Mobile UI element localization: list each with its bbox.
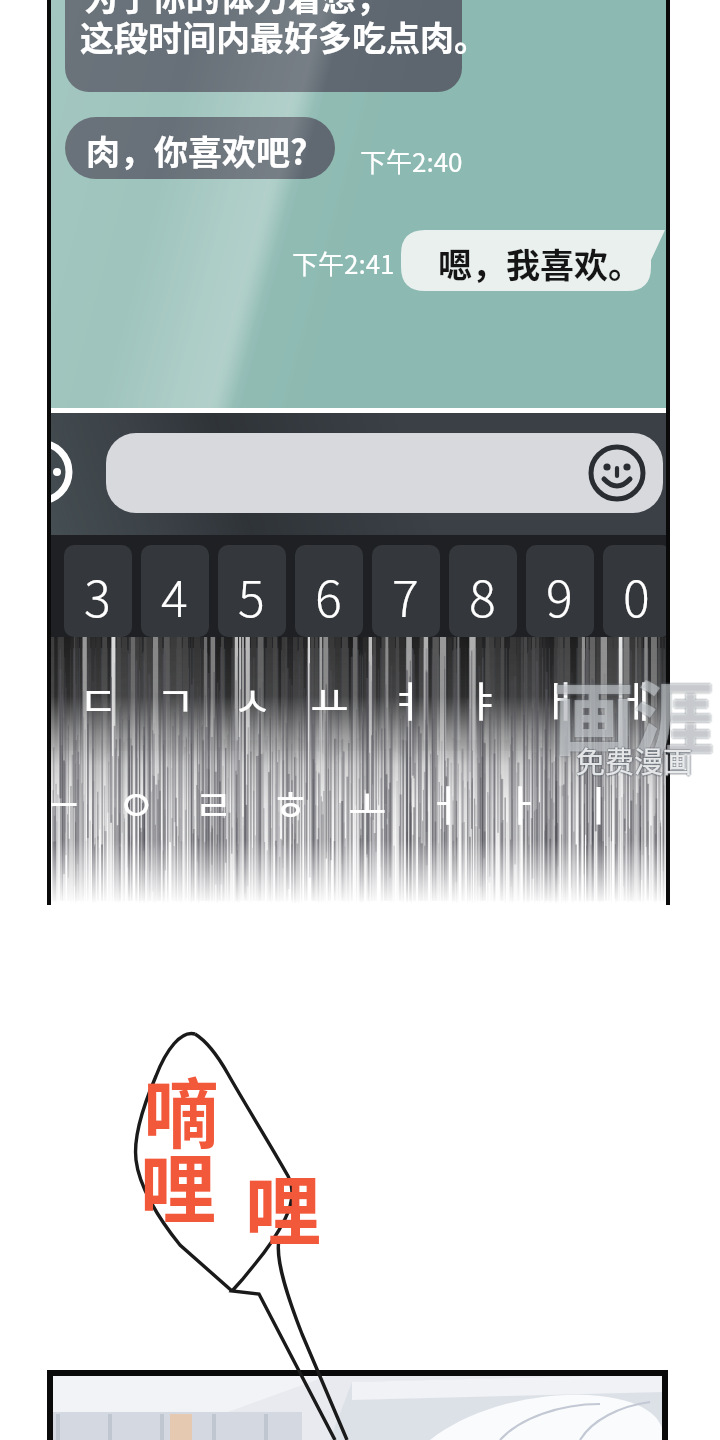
staticText: ㅛ xyxy=(310,668,349,729)
staticText: 免费漫画 xyxy=(578,739,695,781)
staticText: ㅇ xyxy=(117,772,156,833)
staticText: 画涯 xyxy=(553,656,713,772)
staticText: 肉，你喜欢吧? xyxy=(86,126,308,175)
staticText: 为了你的体力着想， xyxy=(84,0,390,21)
staticText: ㅕ xyxy=(387,668,426,729)
staticText: 下午2:41 xyxy=(292,244,395,282)
staticText: 画涯 xyxy=(552,655,712,771)
staticText: 画涯 xyxy=(554,655,714,771)
staticText: 嘀 xyxy=(143,1054,219,1164)
staticText: ㄹ xyxy=(194,772,233,833)
staticText: 画涯 xyxy=(553,654,713,770)
staticText: 7 xyxy=(392,559,419,631)
button[interactable]: Add attachment xyxy=(16,447,68,499)
button[interactable]: Emoji picker xyxy=(591,447,643,499)
staticText: ㄷ xyxy=(79,668,118,729)
staticText: ㅔ xyxy=(618,668,657,729)
staticText: ㅎ xyxy=(271,772,310,833)
staticText: ㄱ xyxy=(156,668,195,729)
staticText: 免费漫画 xyxy=(576,741,693,783)
staticText: ㅑ xyxy=(464,668,503,729)
staticText: ㅓ xyxy=(425,772,464,833)
staticText: ㅡ xyxy=(51,772,79,833)
staticText: 哩 xyxy=(140,1129,216,1239)
button[interactable]: Message input field xyxy=(106,433,663,513)
staticText: 画涯 xyxy=(555,654,715,770)
staticText: 9 xyxy=(546,559,573,631)
staticText: 3 xyxy=(84,559,111,631)
staticText: 0 xyxy=(623,559,650,631)
staticText: 免费漫画 xyxy=(575,739,692,781)
staticText: 免费漫画 xyxy=(576,738,693,780)
staticText: 免费漫画 xyxy=(575,738,692,780)
staticText: 画涯 xyxy=(556,655,716,771)
staticText: 8 xyxy=(469,559,496,631)
staticText: ㅅ xyxy=(233,668,272,729)
staticText: ㅣ xyxy=(579,772,618,833)
staticText: 免费漫画 xyxy=(575,740,692,782)
staticText: 哩 xyxy=(245,1151,321,1261)
staticText: 嗯，我喜欢。 xyxy=(438,239,642,288)
staticText: 下午2:40 xyxy=(360,142,463,180)
staticText: ㅏ xyxy=(502,772,541,833)
staticText: ㅗ xyxy=(348,772,387,833)
staticText: 画涯 xyxy=(554,657,714,773)
staticText: 6 xyxy=(315,559,342,631)
staticText: 画涯 xyxy=(555,656,715,772)
staticText: 4 xyxy=(161,559,188,631)
staticText: 免费漫画 xyxy=(577,740,694,782)
staticText: 免费漫画 xyxy=(577,738,694,780)
staticText: 免费漫画 xyxy=(576,739,693,781)
staticText: 这段时间内最好多吃点肉。 xyxy=(80,12,488,61)
staticText: ㅐ xyxy=(541,668,580,729)
staticText: 画涯 xyxy=(554,653,714,769)
staticText: 5 xyxy=(238,559,265,631)
